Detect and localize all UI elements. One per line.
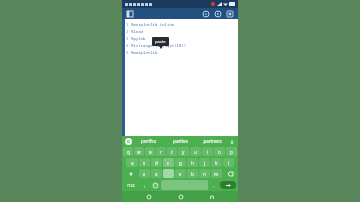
staticText: ?123 (127, 183, 135, 188)
staticText: m (214, 171, 219, 177)
button[interactable]: i (202, 147, 213, 156)
staticText: parties (173, 138, 188, 144)
staticText: x (155, 171, 158, 177)
button[interactable]: Home (176, 192, 185, 201)
staticText: k (215, 160, 218, 166)
button[interactable]: a (126, 158, 138, 167)
staticText: n (203, 171, 206, 177)
staticText: paste (155, 39, 166, 44)
button[interactable]: ?123 (123, 180, 139, 190)
staticText: p (230, 149, 233, 155)
button[interactable]: Emoji (150, 180, 160, 190)
staticText: y (182, 149, 185, 155)
button[interactable]: q (123, 147, 133, 156)
button[interactable]: y (178, 147, 189, 156)
staticText: 4 (126, 43, 129, 48)
button[interactable]: u (190, 147, 201, 156)
button[interactable]: parties (164, 136, 196, 146)
button[interactable]: n (199, 169, 210, 178)
button[interactable]: Undo (201, 9, 210, 18)
button[interactable]: More options (225, 9, 234, 18)
button[interactable]: Google search (125, 138, 132, 145)
staticText: h (191, 160, 194, 166)
button[interactable]: b (187, 169, 198, 178)
button[interactable]: . (209, 180, 218, 190)
button[interactable]: Backspace (223, 169, 237, 178)
staticText: i (207, 149, 209, 155)
button[interactable]: Recents (207, 192, 216, 201)
button[interactable]: portfra (132, 136, 164, 146)
button[interactable]: w (134, 147, 144, 156)
staticText: 1 (126, 22, 129, 27)
button[interactable]: k (211, 158, 222, 167)
staticText: g (179, 160, 182, 166)
button[interactable]: Expand suggestions (228, 138, 235, 145)
staticText: %matplotlib inline (131, 22, 175, 27)
button[interactable]: o (214, 147, 225, 156)
staticText: %pylab (131, 36, 146, 41)
button[interactable]: v (175, 169, 186, 178)
staticText: j (204, 160, 206, 166)
staticText: v (179, 171, 182, 177)
button[interactable]: c (163, 158, 174, 167)
staticText: 3 (126, 36, 129, 41)
button[interactable]: partners (196, 136, 228, 146)
button[interactable] (163, 169, 174, 178)
staticText: e (149, 149, 152, 155)
button[interactable]: l (223, 158, 234, 167)
button[interactable]: Enter (220, 181, 236, 189)
staticText: , (144, 182, 146, 188)
button[interactable]: m (211, 169, 222, 178)
staticText: z (143, 171, 146, 177)
button[interactable]: d (151, 158, 162, 167)
staticText: c (167, 160, 170, 166)
staticText: r (160, 149, 162, 155)
button[interactable]: p (226, 147, 237, 156)
staticText: d (155, 160, 158, 166)
staticText: u (194, 149, 197, 155)
staticText: l (228, 160, 230, 166)
staticText: 5 (126, 50, 129, 55)
staticText: 2 (126, 29, 129, 34)
staticText: %load (131, 29, 143, 34)
staticText: G (127, 139, 130, 144)
button[interactable]: t (167, 147, 177, 156)
staticText: %matplotlib (131, 50, 158, 55)
staticText: a (131, 160, 134, 166)
staticText: s (143, 160, 146, 166)
button[interactable]: Run (213, 9, 222, 18)
staticText: . (213, 182, 215, 188)
staticText: b (191, 171, 194, 177)
button[interactable]: r (156, 147, 166, 156)
staticText: t (171, 149, 173, 155)
button[interactable]: , (140, 180, 149, 190)
staticText: portfra (141, 138, 156, 144)
staticText: partners (203, 138, 222, 144)
button[interactable]: h (187, 158, 198, 167)
button[interactable]: x (151, 169, 162, 178)
button[interactable]: Menu (126, 10, 134, 18)
button[interactable]: j (199, 158, 210, 167)
staticText: w (137, 149, 141, 155)
button[interactable]: g (175, 158, 186, 167)
button[interactable]: z (139, 169, 150, 178)
button[interactable]: Back (144, 192, 153, 201)
staticText: o (218, 149, 221, 155)
button[interactable]: Shift (123, 169, 138, 178)
staticText: q (127, 149, 130, 155)
button[interactable]: s (139, 158, 150, 167)
staticText: %ls(range(10),sqrt(10)) (131, 43, 187, 48)
button[interactable]: e (145, 147, 155, 156)
